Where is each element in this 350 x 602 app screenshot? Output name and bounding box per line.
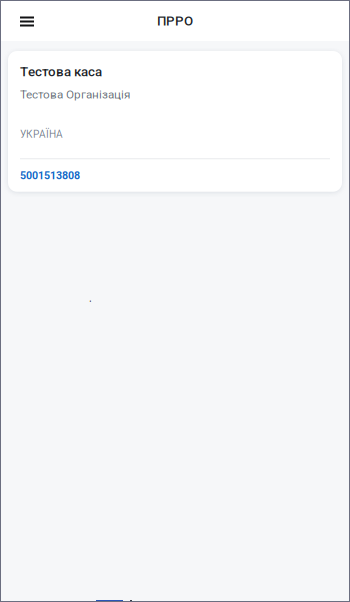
button[interactable]: 5001513808 [20, 159, 330, 184]
staticText: УКРАЇНА [20, 128, 63, 140]
staticText: ПРРО [157, 13, 193, 29]
staticText: Тестова Організація [20, 88, 130, 101]
staticText: . [89, 292, 92, 304]
staticText: 5001513808 [20, 169, 80, 182]
button[interactable]: Menu [10, 4, 44, 38]
staticText: Тестова каса [20, 64, 102, 80]
